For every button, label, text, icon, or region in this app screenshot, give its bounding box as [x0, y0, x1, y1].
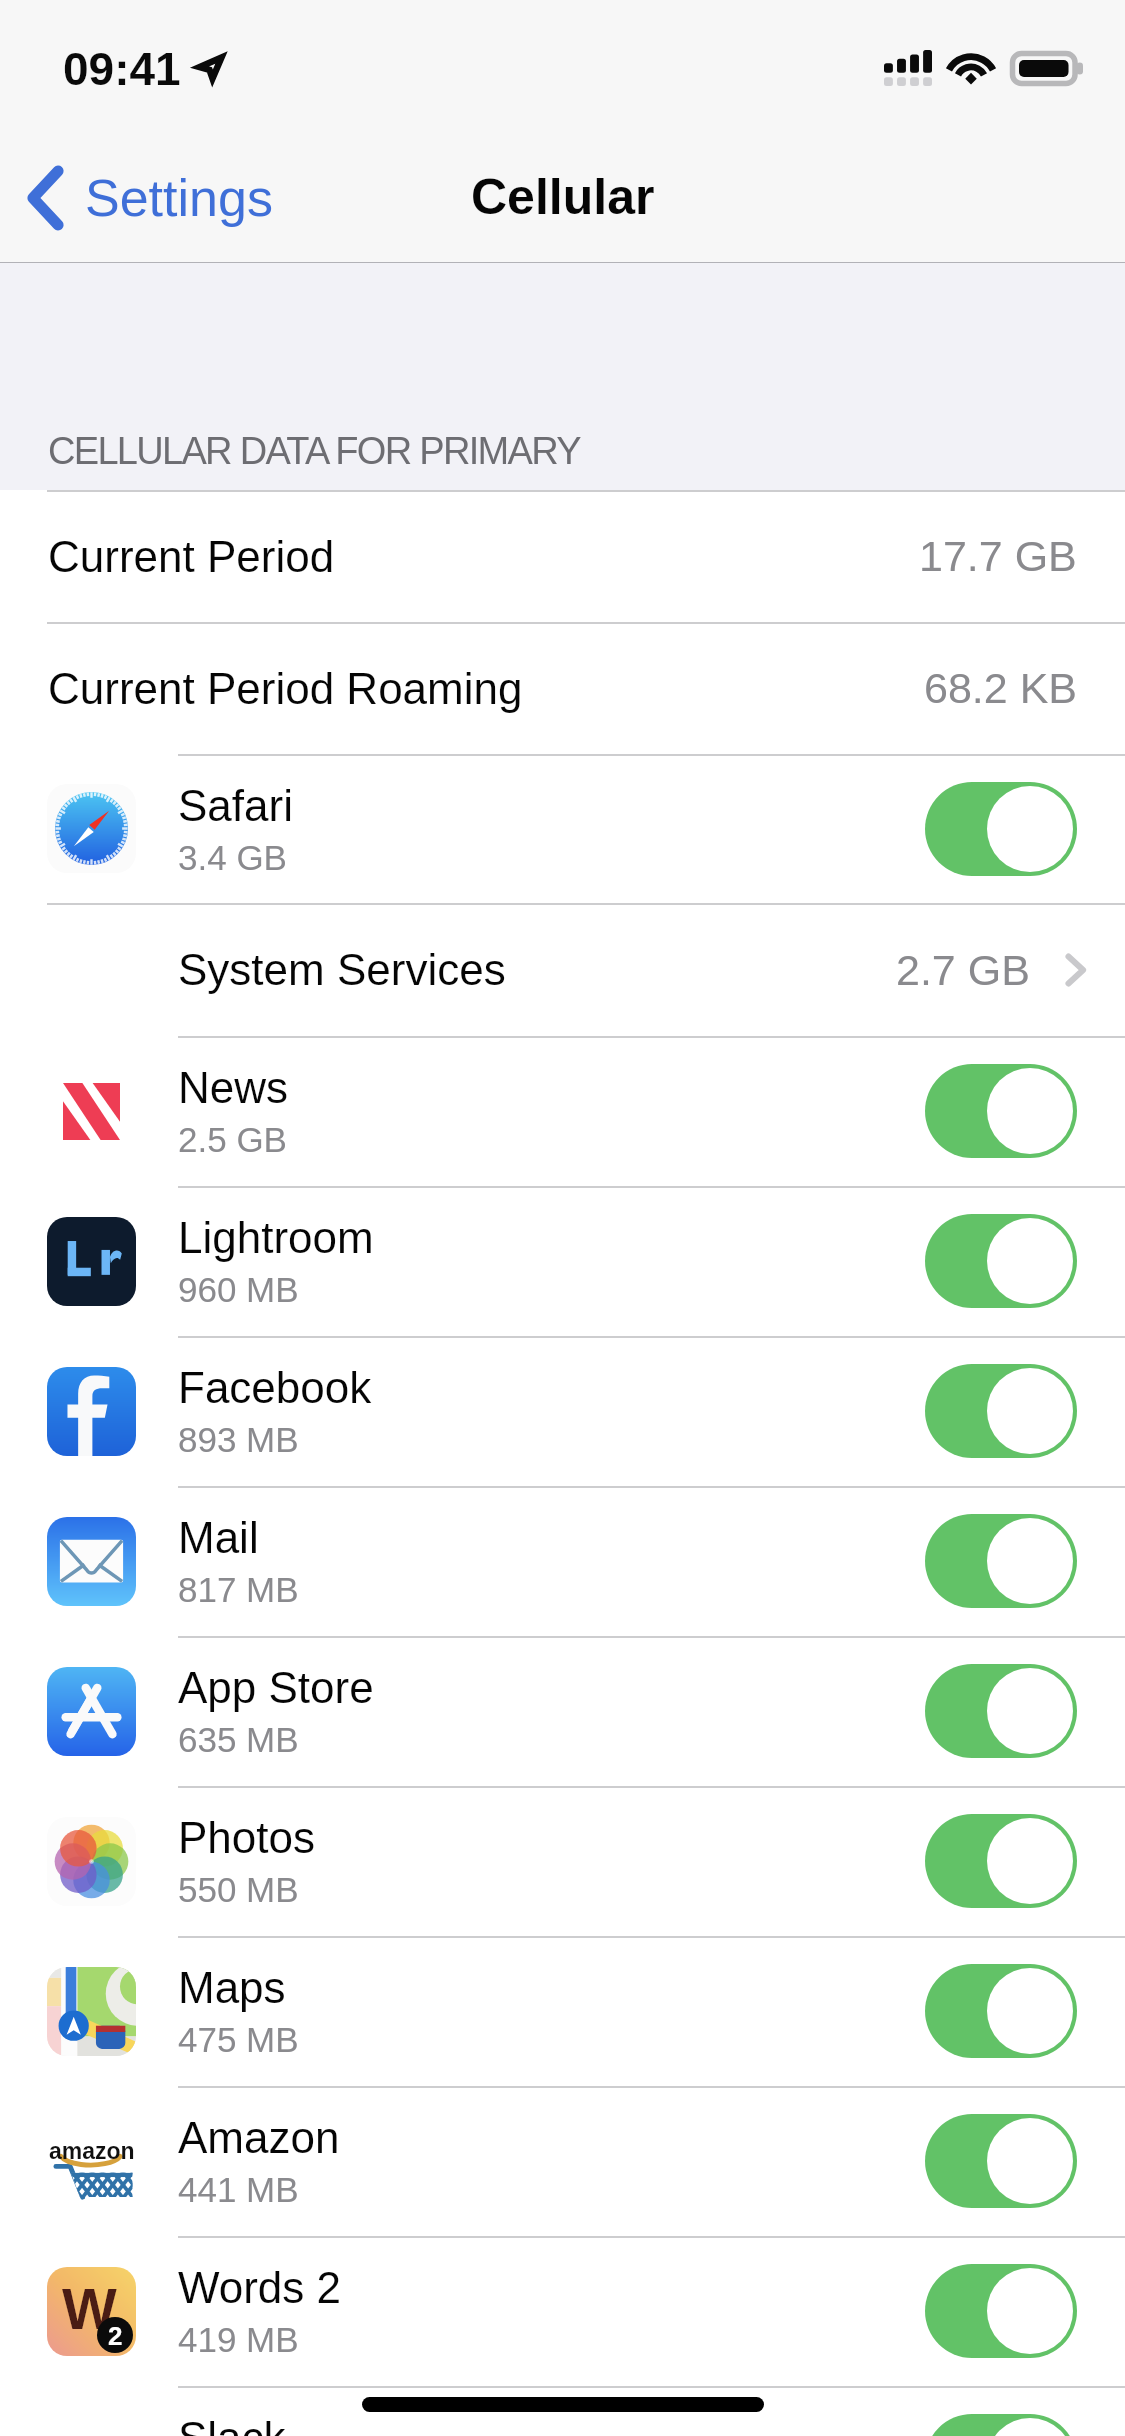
- staticText: amazon: [49, 2138, 135, 2164]
- staticText: System Services: [178, 945, 506, 994]
- button[interactable]: Cellular data for Facebook, on: [925, 1364, 1077, 1458]
- staticText: News: [178, 1063, 289, 1112]
- staticText: 2.5 GB: [178, 1120, 287, 1159]
- button[interactable]: Mail: [0, 1486, 1125, 1636]
- button[interactable]: Facebook: [0, 1336, 1125, 1486]
- staticText: Cellular: [471, 169, 655, 225]
- button[interactable]: Lightroom: [0, 1186, 1125, 1336]
- button[interactable]: Back to Settings: [0, 158, 293, 238]
- staticText: 893 MB: [178, 1420, 299, 1459]
- button[interactable]: System Services: [0, 903, 1125, 1036]
- button[interactable]: News: [0, 1036, 1125, 1186]
- button[interactable]: Cellular data for Slack, on: [925, 2414, 1077, 2436]
- staticText: Safari: [178, 781, 293, 830]
- staticText: 2: [108, 2321, 123, 2350]
- staticText: 17.7 GB: [919, 532, 1077, 580]
- button[interactable]: Photos: [0, 1786, 1125, 1936]
- staticText: 419 MB: [178, 2320, 299, 2359]
- staticText: Facebook: [178, 1363, 372, 1412]
- button[interactable]: Current Period Roaming: [0, 622, 1125, 754]
- staticText: Slack: [178, 2413, 286, 2436]
- staticText: Amazon: [178, 2113, 340, 2162]
- staticText: Words 2: [178, 2263, 342, 2312]
- button[interactable]: App Store: [0, 1636, 1125, 1786]
- staticText: W: [62, 2276, 117, 2341]
- staticText: 960 MB: [178, 1270, 299, 1309]
- button[interactable]: Slack: [0, 2386, 1125, 2436]
- button[interactable]: Cellular data for App Store, on: [925, 1664, 1077, 1758]
- staticText: Lightroom: [178, 1213, 374, 1262]
- staticText: 817 MB: [178, 1570, 299, 1609]
- staticText: CELLULAR DATA FOR PRIMARY: [48, 430, 580, 472]
- button[interactable]: Cellular data for Mail, on: [925, 1514, 1077, 1608]
- staticText: Photos: [178, 1813, 315, 1862]
- staticText: 2.7 GB: [896, 946, 1030, 994]
- button[interactable]: Maps: [0, 1936, 1125, 2086]
- button[interactable]: Safari: [0, 754, 1125, 903]
- staticText: Current Period: [48, 532, 335, 581]
- staticText: 635 MB: [178, 1720, 299, 1759]
- button[interactable]: Cellular data for Lightroom, on: [925, 1214, 1077, 1308]
- button[interactable]: Cellular data for Safari, on: [925, 782, 1077, 876]
- staticText: 550 MB: [178, 1870, 299, 1909]
- staticText: App Store: [178, 1663, 374, 1712]
- button[interactable]: Cellular data for Amazon, on: [925, 2114, 1077, 2208]
- staticText: Maps: [178, 1963, 286, 2012]
- staticText: 475 MB: [178, 2020, 299, 2059]
- button[interactable]: Cellular data for Maps, on: [925, 1964, 1077, 2058]
- staticText: 441 MB: [178, 2170, 299, 2209]
- staticText: 68.2 KB: [924, 664, 1077, 712]
- button[interactable]: amazon: [0, 2086, 1125, 2236]
- button[interactable]: Current Period: [0, 490, 1125, 622]
- button[interactable]: W: [0, 2236, 1125, 2386]
- button[interactable]: Cellular data for Photos, on: [925, 1814, 1077, 1908]
- staticText: Settings: [85, 169, 273, 227]
- staticText: Current Period Roaming: [48, 664, 523, 713]
- staticText: 09:41: [63, 43, 181, 94]
- button[interactable]: Cellular data for News, on: [925, 1064, 1077, 1158]
- staticText: 3.4 GB: [178, 838, 287, 877]
- staticText: Mail: [178, 1513, 259, 1562]
- button[interactable]: Cellular data for Words 2, on: [925, 2264, 1077, 2358]
